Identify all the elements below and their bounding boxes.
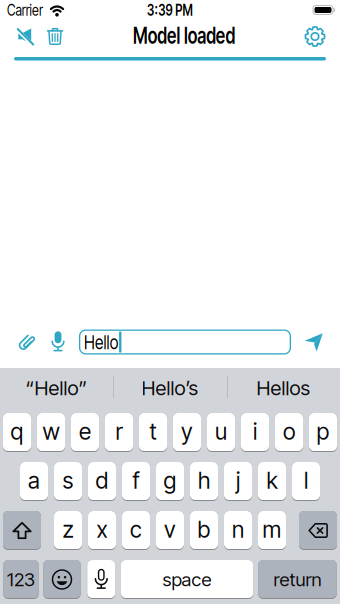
button[interactable]: q [3,413,31,452]
button[interactable]: Hello [79,329,291,354]
button[interactable]: l [292,462,320,501]
staticText: space [162,568,211,590]
staticText: c [130,516,142,543]
button[interactable]: r [105,413,133,452]
button[interactable]: Emoji [43,560,81,599]
staticText: k [266,467,277,494]
button[interactable]: Hello’s [113,365,227,413]
button[interactable]: n [224,511,252,550]
staticText: v [164,516,176,543]
staticText: g [163,467,176,494]
staticText: o [283,418,295,445]
button[interactable]: Hellos [227,365,340,413]
button[interactable]: “Hello” [0,365,113,413]
button[interactable]: g [156,462,184,501]
button[interactable]: t [139,413,167,452]
button[interactable]: Dictate [48,329,68,355]
button[interactable]: a [20,462,48,501]
button[interactable]: Delete conversation [43,21,67,51]
button[interactable]: z [54,511,82,550]
button[interactable]: d [88,462,116,501]
button[interactable]: c [122,511,150,550]
button[interactable]: w [37,413,65,452]
staticText: return [273,568,321,590]
staticText: a [28,467,40,494]
staticText: m [262,516,281,543]
button[interactable]: b [190,511,218,550]
button[interactable]: Dictate [87,560,115,599]
button[interactable]: s [54,462,82,501]
button[interactable]: i [241,413,269,452]
button[interactable]: return [258,560,337,599]
button[interactable]: e [71,413,99,452]
staticText: Hello [84,330,128,354]
staticText: f [132,467,139,494]
button[interactable]: Attach file [14,329,39,355]
staticText: w [42,418,59,445]
staticText: l [304,467,308,494]
button[interactable]: space [121,560,253,599]
staticText: 3:39 PM [139,1,201,19]
staticText: 123 [7,568,35,590]
staticText: b [197,516,210,543]
button[interactable]: Send [303,329,325,355]
button[interactable]: Shift [3,511,41,550]
button[interactable]: v [156,511,184,550]
staticText: “Hello” [25,376,87,400]
staticText: Model loaded [115,22,253,49]
button[interactable]: Numbers [3,560,39,599]
staticText: z [62,516,73,543]
staticText: t [149,418,156,445]
staticText: Hello’s [141,376,198,400]
button[interactable]: m [258,511,286,550]
staticText: Carrier [7,1,53,19]
button[interactable]: h [190,462,218,501]
staticText: e [79,418,91,445]
button[interactable]: Delete [299,511,337,550]
staticText: j [236,467,240,494]
button[interactable]: o [275,413,303,452]
staticText: h [198,467,210,494]
staticText: x [96,516,107,543]
button[interactable]: f [122,462,150,501]
button[interactable]: u [207,413,235,452]
staticText: i [253,418,257,445]
button[interactable]: j [224,462,252,501]
staticText: u [215,418,227,445]
button[interactable]: Settings [304,21,326,51]
staticText: Hellos [256,376,310,400]
staticText: d [95,467,108,494]
staticText: n [232,516,244,543]
staticText: q [10,418,23,445]
button[interactable]: x [88,511,116,550]
staticText: r [115,418,122,445]
button[interactable]: y [173,413,201,452]
button[interactable]: Mute [12,21,38,51]
staticText: p [316,418,329,445]
button[interactable]: p [309,413,337,452]
button[interactable]: k [258,462,286,501]
staticText: y [181,418,193,445]
staticText: s [62,467,73,494]
